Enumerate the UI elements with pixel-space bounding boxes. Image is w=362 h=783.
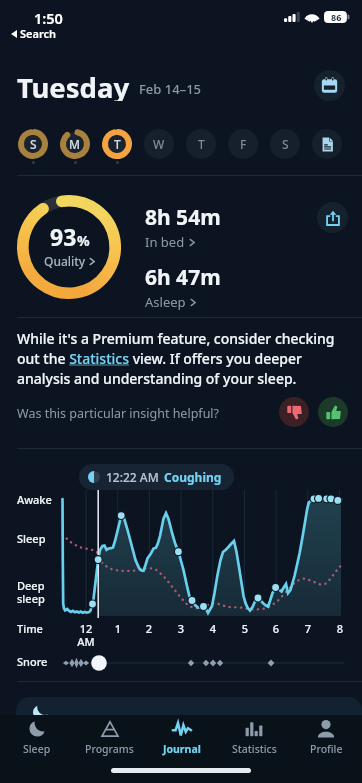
button[interactable]: S bbox=[264, 124, 306, 166]
staticText: Sleep bbox=[23, 742, 51, 756]
staticText: 86 bbox=[331, 11, 342, 23]
staticText: 4 bbox=[199, 621, 227, 636]
staticText: T bbox=[198, 136, 205, 152]
staticText: S bbox=[30, 136, 37, 152]
button[interactable]: M bbox=[54, 124, 96, 166]
staticText: Coughing bbox=[164, 469, 222, 485]
staticText: % bbox=[77, 231, 90, 250]
button[interactable]: Helpful bbox=[318, 397, 348, 427]
staticText: While it's a Premium feature, consider c… bbox=[17, 329, 337, 388]
staticText: F bbox=[240, 136, 247, 152]
staticText: 12:22 AM bbox=[106, 469, 159, 485]
button[interactable]: Programs bbox=[73, 715, 146, 759]
staticText: 6h 47m bbox=[145, 263, 221, 292]
button[interactable]: W bbox=[138, 124, 180, 166]
staticText: 3 bbox=[167, 621, 195, 636]
staticText: Asleep bbox=[145, 293, 186, 311]
staticText: Profile bbox=[310, 742, 343, 756]
staticText: In bed bbox=[145, 233, 185, 251]
staticText: W bbox=[153, 136, 165, 152]
button[interactable] bbox=[16, 697, 362, 737]
button[interactable]: Journal bbox=[146, 715, 218, 759]
button[interactable]: Not helpful bbox=[279, 397, 309, 427]
button[interactable]: Notes bbox=[306, 124, 348, 166]
staticText: 6 bbox=[262, 621, 290, 636]
staticText: Was this particular insight helpful? bbox=[17, 405, 220, 422]
staticText: S bbox=[282, 136, 289, 152]
button[interactable]: 12:22 AM bbox=[79, 464, 234, 490]
staticText: T bbox=[114, 136, 121, 152]
staticText: Tuesday bbox=[17, 69, 130, 101]
staticText: Sleep bbox=[17, 531, 46, 546]
staticText: 1:50 bbox=[34, 8, 63, 28]
button[interactable]: Sleep bbox=[0, 715, 73, 759]
button[interactable]: S bbox=[12, 124, 54, 166]
button[interactable]: Statistics bbox=[218, 715, 290, 759]
staticText: 8 bbox=[326, 621, 354, 636]
staticText: Deep sleep bbox=[17, 578, 45, 606]
button[interactable]: T bbox=[96, 124, 138, 166]
button[interactable]: Share bbox=[317, 202, 348, 233]
button[interactable]: Calendar bbox=[314, 70, 345, 101]
staticText: M bbox=[69, 136, 81, 152]
staticText: Programs bbox=[85, 742, 134, 756]
staticText: 93 bbox=[50, 221, 77, 252]
staticText: Awake bbox=[17, 492, 52, 507]
staticText: Time bbox=[17, 621, 43, 636]
staticText: Search bbox=[20, 26, 57, 41]
staticText: Journal bbox=[163, 742, 201, 756]
button[interactable]: 93 bbox=[17, 195, 121, 299]
staticText: Feb 14–15 bbox=[139, 80, 202, 98]
staticText: Statistics bbox=[232, 742, 277, 756]
staticText: Snore bbox=[17, 654, 48, 669]
staticText: 2 bbox=[135, 621, 163, 636]
staticText: 5 bbox=[231, 621, 259, 636]
staticText: 12 AM bbox=[72, 621, 100, 649]
staticText: Quality bbox=[44, 253, 86, 269]
staticText: 8h 54m bbox=[145, 203, 221, 232]
button[interactable]: T bbox=[180, 124, 222, 166]
button[interactable]: F bbox=[222, 124, 264, 166]
button[interactable]: 8h 54m bbox=[145, 203, 221, 310]
staticText: 1 bbox=[104, 621, 132, 636]
staticText: 7 bbox=[294, 621, 322, 636]
button[interactable]: Profile bbox=[290, 715, 362, 759]
